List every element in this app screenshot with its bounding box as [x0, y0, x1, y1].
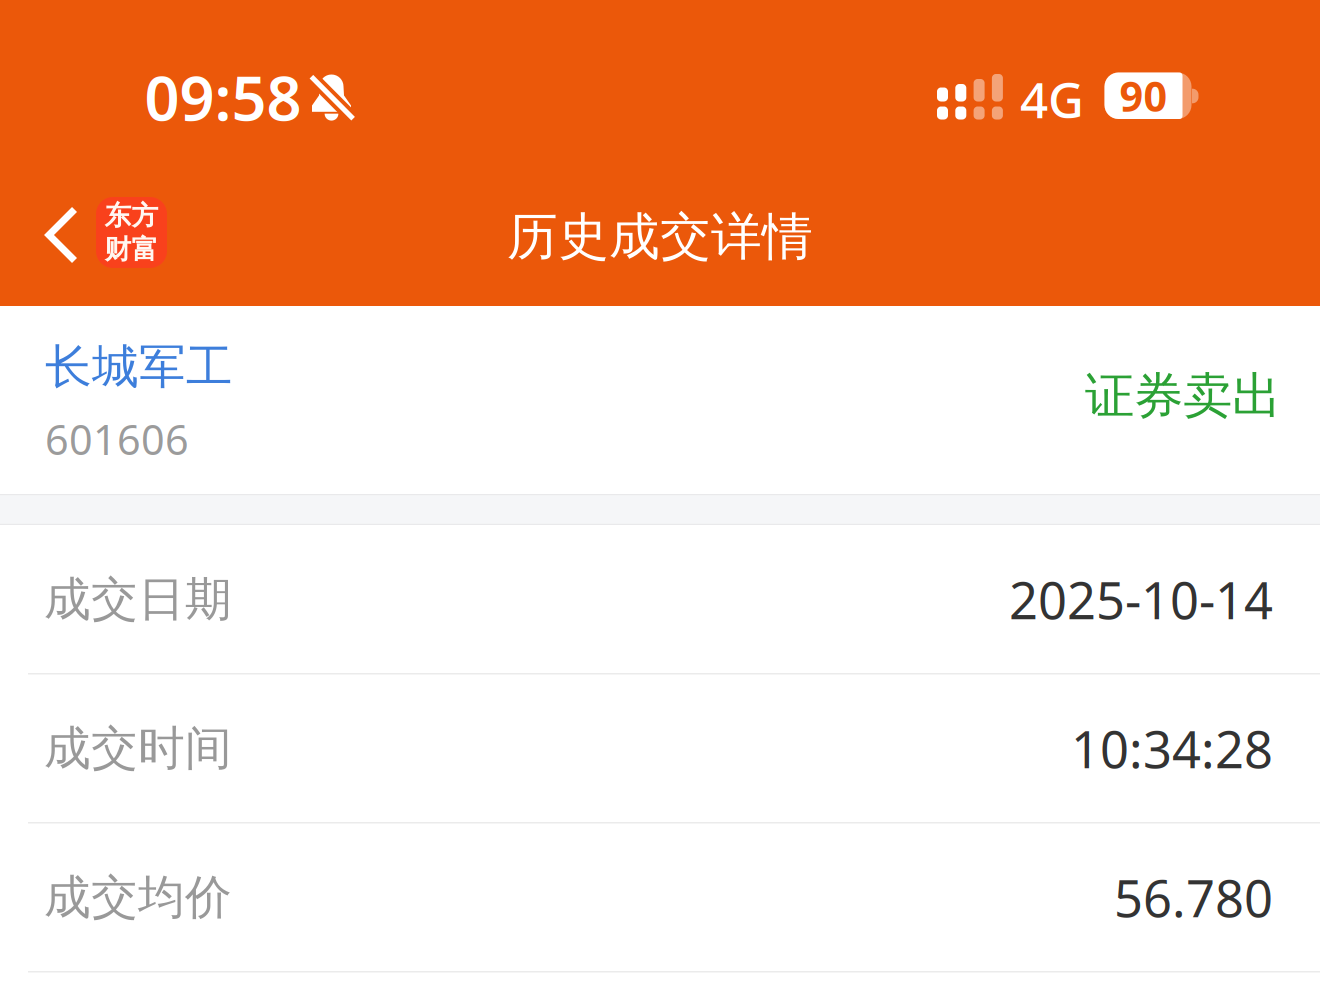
staticText: 601606 — [45, 412, 189, 466]
staticText: 2025-10-14 — [1009, 566, 1273, 633]
staticText: 历史成交详情 — [507, 206, 813, 268]
button[interactable]: 东方财富 — [96, 197, 167, 268]
staticText: 09:58 — [144, 56, 301, 138]
button[interactable]: Back — [26, 190, 96, 280]
staticText: 10:34:28 — [1071, 715, 1273, 782]
staticText: 东方 — [104, 199, 158, 232]
staticText: 90 — [1119, 68, 1167, 123]
staticText: 成交时间 — [44, 720, 232, 777]
staticText: 4G — [1020, 66, 1084, 132]
staticText: 财富 — [104, 233, 158, 266]
staticText: 56.780 — [1114, 864, 1273, 931]
staticText: 成交均价 — [44, 869, 232, 926]
staticText: 成交日期 — [44, 571, 232, 628]
staticText: 长城军工 — [45, 338, 233, 396]
staticText: 证券卖出 — [1085, 366, 1281, 426]
